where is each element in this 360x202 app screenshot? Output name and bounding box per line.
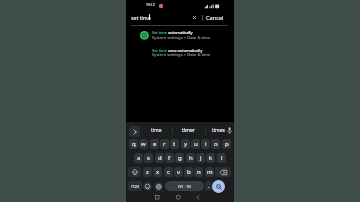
staticText: Set time automatically [152,30,193,35]
button[interactable]: n [194,167,203,177]
button[interactable] [176,195,181,200]
button[interactable] [130,29,230,43]
button[interactable]: u [191,139,200,149]
staticText: y [184,140,188,148]
staticText: timer [182,127,195,134]
staticText: . [208,182,210,190]
button[interactable]: w [139,139,148,149]
staticText: j [200,154,202,162]
button[interactable] [129,126,140,137]
button[interactable]: s [144,153,153,163]
staticText: x [156,168,160,176]
staticText: h [189,154,193,162]
button[interactable]: x [153,167,162,177]
staticText: g [178,154,182,162]
staticText: times [212,127,225,134]
button[interactable] [143,182,152,191]
staticText: p [225,140,229,148]
button[interactable]: timer [178,125,198,136]
button[interactable]: g [175,153,184,163]
button[interactable]: time [146,125,166,136]
button[interactable]: l [217,153,226,163]
staticText: v [177,168,181,176]
button[interactable] [196,195,201,200]
staticText: Cancel [206,14,224,22]
staticText: System settings > Date & time [152,35,211,41]
staticText: b [187,168,191,176]
button[interactable]: e [150,139,159,149]
button[interactable] [212,180,225,193]
staticText: 10:12 [146,2,155,7]
staticText: l [221,154,223,162]
staticText: f [168,154,171,162]
button[interactable]: t [170,139,179,149]
button[interactable]: p [222,139,231,149]
button[interactable]: c [164,167,173,177]
staticText: r [163,140,166,148]
staticText: Set time zone automatically [152,48,203,53]
staticText: z [146,168,149,176]
staticText: e [153,140,157,148]
staticText: q [132,140,136,148]
staticText: w [141,140,146,148]
staticText: m [207,168,213,176]
button[interactable]: d [155,153,164,163]
button[interactable]: . [205,181,212,191]
button[interactable] [215,167,231,177]
button[interactable] [154,182,163,191]
button[interactable] [128,167,141,177]
staticText: t [173,140,176,148]
button[interactable] [130,46,230,60]
staticText: n [197,168,201,176]
button[interactable]: b [184,167,193,177]
button[interactable]: r [160,139,169,149]
button[interactable]: f [165,153,174,163]
staticText: i [205,140,207,148]
button[interactable]: o [211,139,220,149]
staticText: EN · IN [178,184,191,189]
button[interactable] [193,16,196,19]
staticText: u [194,140,198,148]
button[interactable]: h [186,153,195,163]
button[interactable]: a [134,153,143,163]
button[interactable]: times [210,125,227,136]
button[interactable]: m [205,167,214,177]
staticText: s [147,154,150,162]
staticText: time [151,127,162,134]
button[interactable]: z [143,167,152,177]
button[interactable] [155,195,160,200]
staticText: a [137,154,141,162]
button[interactable]: ?123 [128,181,142,191]
staticText: c [167,168,170,176]
button[interactable]: EN · IN [165,181,204,191]
staticText: ?123 [131,184,140,189]
button[interactable]: k [206,153,215,163]
button[interactable]: i [201,139,210,149]
staticText: System settings > Date & time [152,52,211,58]
staticText: d [158,154,162,162]
button[interactable]: v [174,167,183,177]
button[interactable]: q [129,139,138,149]
staticText: k [209,154,213,162]
staticText: set time [131,14,151,21]
button[interactable] [227,127,232,135]
button[interactable]: j [196,153,205,163]
staticText: o [214,140,218,148]
button[interactable]: y [181,139,190,149]
